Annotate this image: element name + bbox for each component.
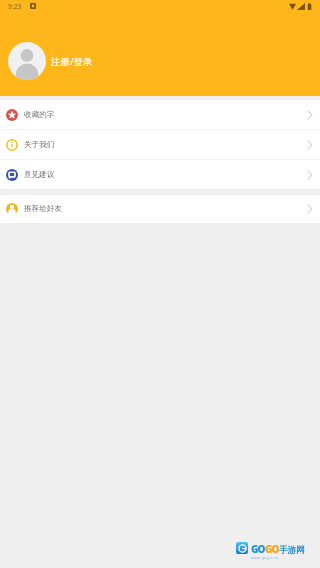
staticText: 9:23 (8, 2, 22, 11)
button[interactable]: 关于我们 (0, 130, 320, 159)
staticText: 收藏的字 (24, 110, 55, 120)
button[interactable]: 意见建议 (0, 160, 320, 189)
staticText: 推荐给好友 (24, 204, 62, 214)
staticText: 手游网 (279, 545, 305, 556)
staticText: GO (265, 542, 279, 556)
button[interactable]: 收藏的字 (0, 100, 320, 129)
staticText: 意见建议 (24, 170, 55, 180)
staticText: 关于我们 (24, 140, 55, 150)
staticText: GO (251, 542, 265, 556)
button[interactable]: 注册/登录 (0, 24, 320, 98)
staticText: 注册/登录 (51, 55, 93, 68)
staticText: w w w . g o g o . c n (251, 556, 279, 560)
button[interactable]: 推荐给好友 (0, 195, 320, 223)
